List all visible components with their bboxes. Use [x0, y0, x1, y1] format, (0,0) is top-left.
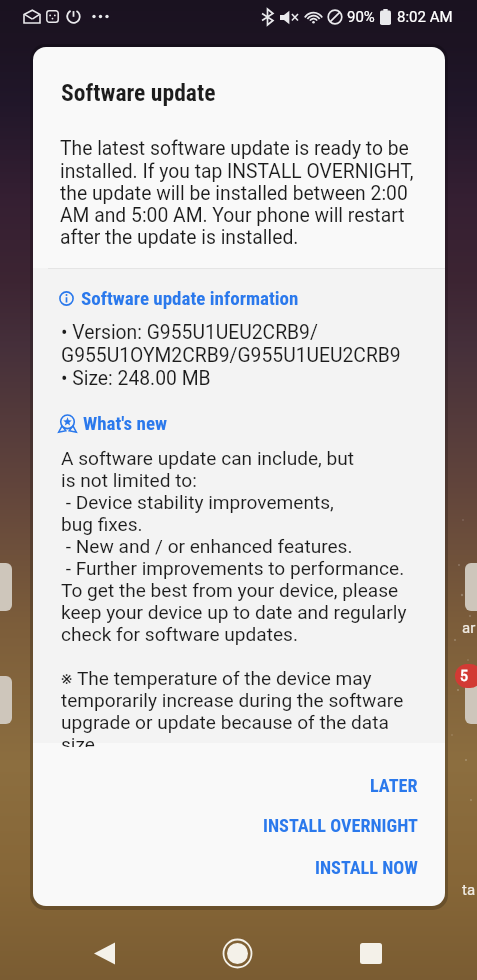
button[interactable]: LATER: [33, 768, 445, 802]
staticText: ta: [462, 881, 476, 899]
staticText: 90%: [347, 8, 375, 26]
staticText: Software update: [61, 79, 216, 107]
staticText: Software update information: [81, 287, 299, 309]
staticText: • Version: G955U1UEU2CRB9/ G955U1OYM2CRB…: [61, 321, 401, 390]
staticText: A software update can include, but is no…: [61, 447, 407, 747]
button[interactable]: INSTALL OVERNIGHT: [33, 808, 445, 842]
button[interactable]: Recent apps: [347, 929, 395, 977]
staticText: 8:02 AM: [397, 8, 453, 26]
staticText: 5: [460, 668, 468, 684]
staticText: LATER: [370, 775, 418, 796]
staticText: The latest software update is ready to b…: [60, 137, 420, 248]
button[interactable]: Home: [213, 929, 261, 977]
staticText: INSTALL OVERNIGHT: [263, 815, 418, 836]
staticText: INSTALL NOW: [315, 857, 418, 878]
button[interactable]: Back: [80, 929, 128, 977]
button[interactable]: INSTALL NOW: [33, 850, 445, 884]
staticText: ar: [462, 619, 476, 637]
staticText: What's new: [83, 412, 168, 434]
